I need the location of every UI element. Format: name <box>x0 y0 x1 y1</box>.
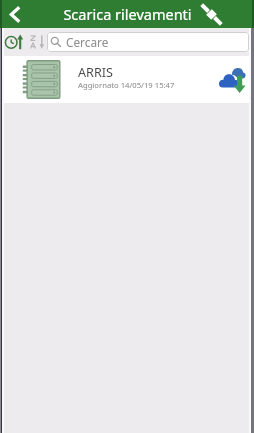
button[interactable]: ARRIS <box>4 56 250 103</box>
button[interactable]: Back <box>0 0 30 28</box>
staticText: Cercare <box>66 34 109 50</box>
staticText: ARRIS <box>78 64 113 81</box>
button[interactable]: Sort by date <box>3 30 27 54</box>
staticText: Aggiornato 14/05/19 15:47 <box>78 80 175 90</box>
staticText: Scarica rilevamenti <box>63 4 192 24</box>
button[interactable]: Cercare <box>47 32 249 52</box>
button[interactable]: Sort alphabetically <box>27 32 46 51</box>
button[interactable]: Satellite <box>195 0 227 28</box>
